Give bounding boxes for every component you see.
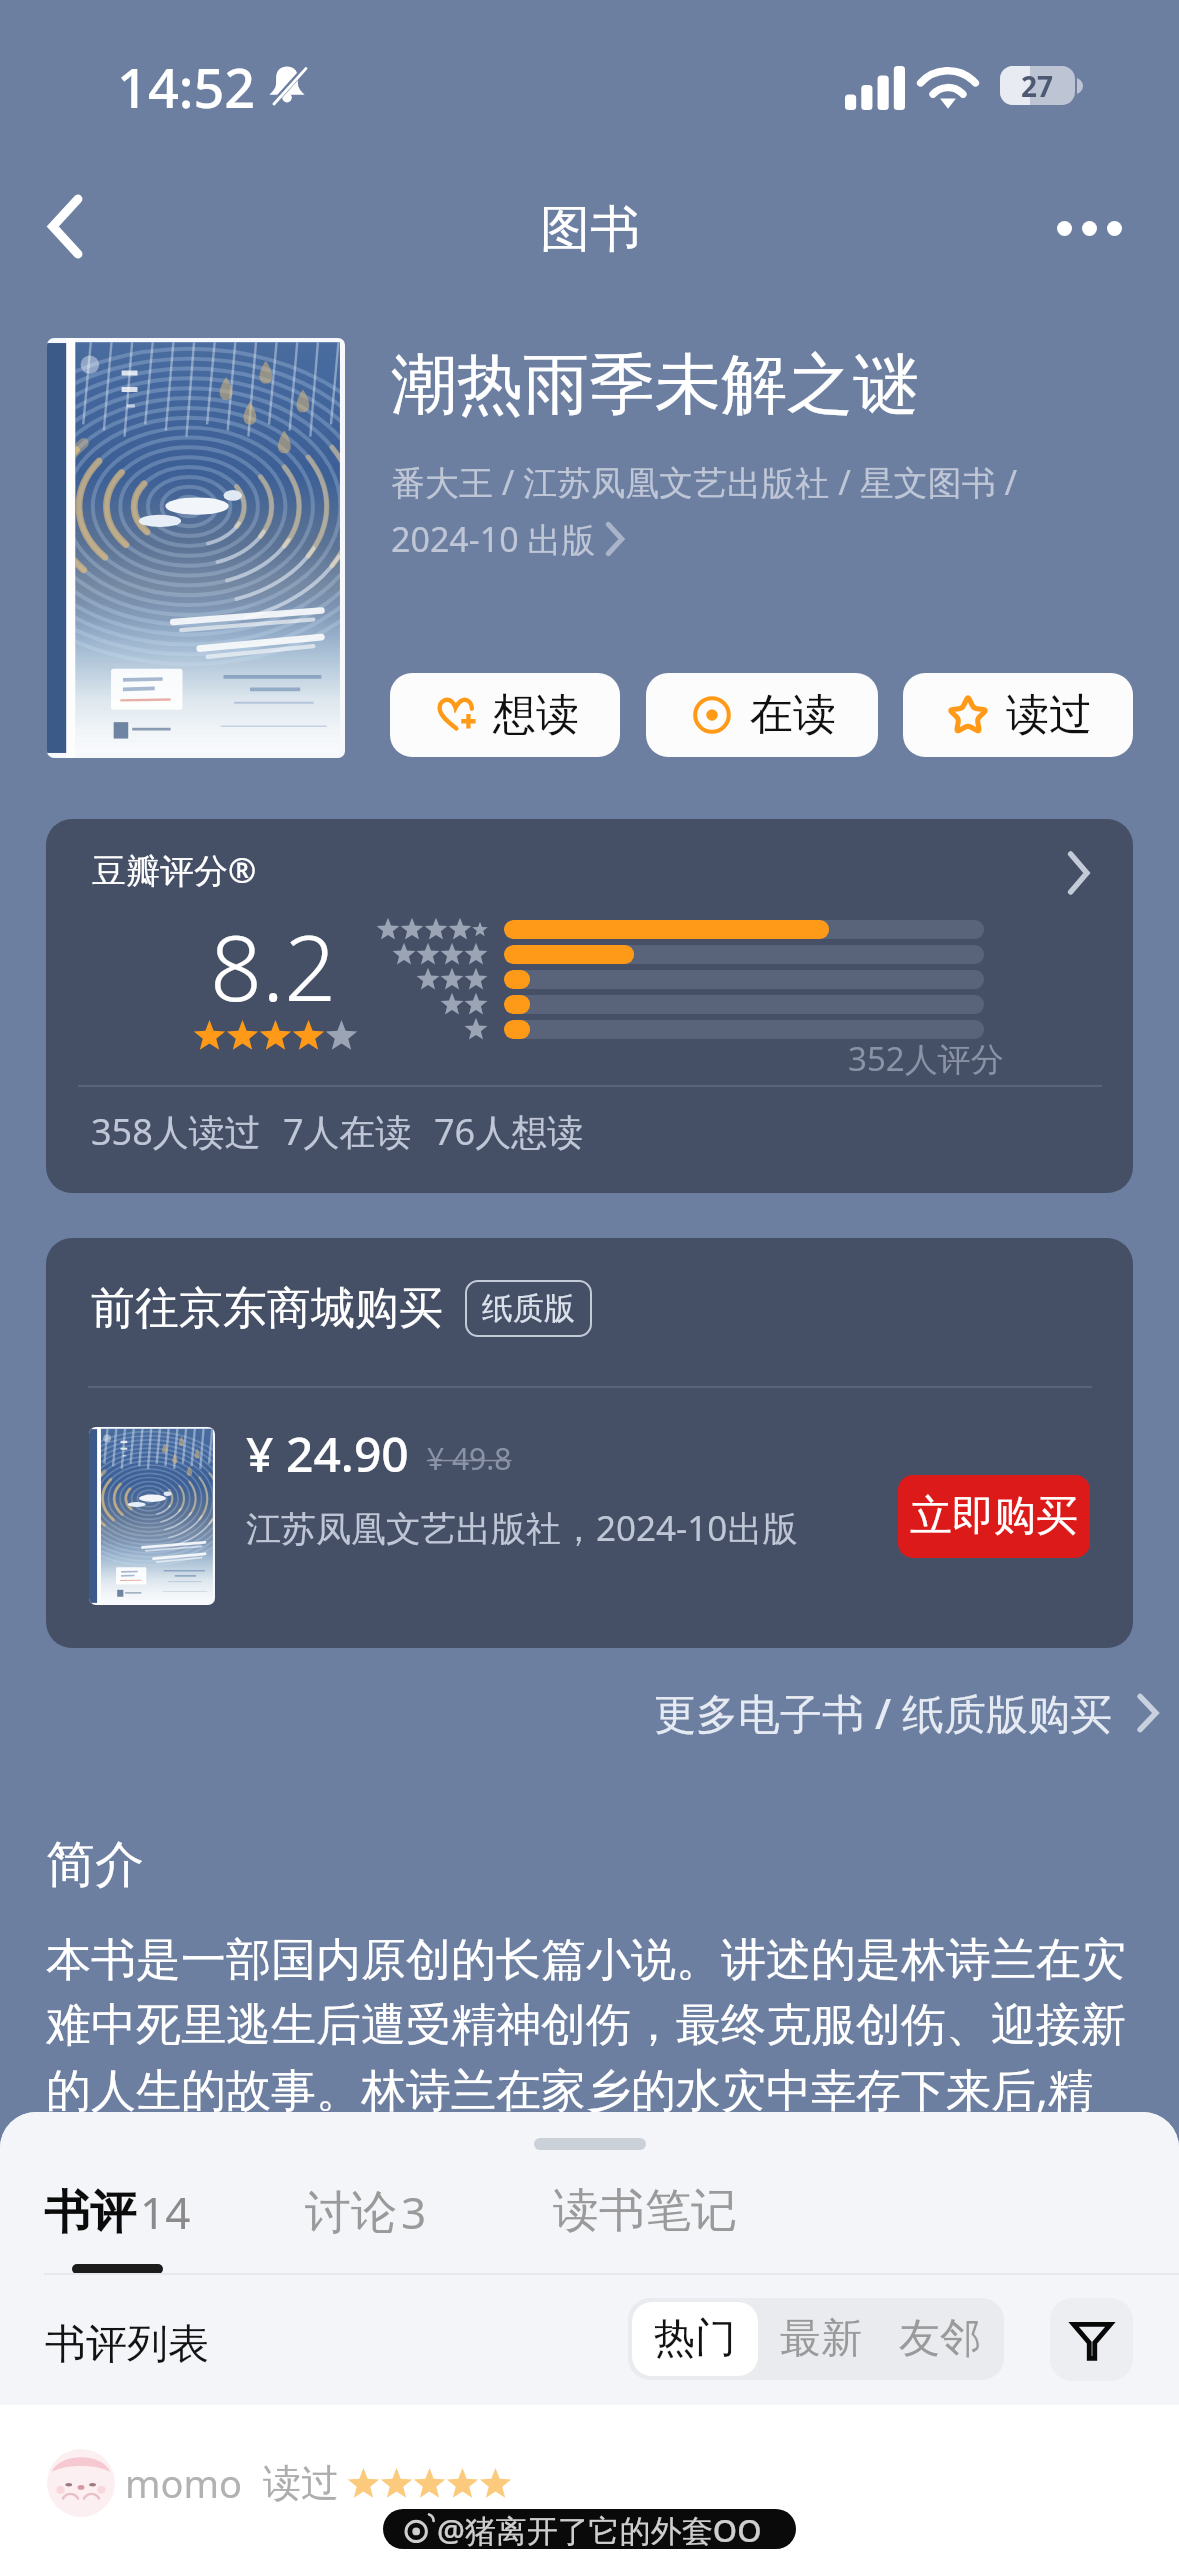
staticText: 读书笔记 xyxy=(553,2182,737,2240)
staticText: 纸质版 xyxy=(482,1289,575,1328)
staticText: momo xyxy=(125,2457,243,2509)
button[interactable]: Back xyxy=(19,180,111,272)
button[interactable]: 更多电子书 / 纸质版购买 xyxy=(648,1678,1165,1747)
staticText: 最新 xyxy=(780,2313,862,2365)
staticText: 简介 xyxy=(46,1834,144,1896)
button[interactable]: 书评 xyxy=(44,2182,191,2242)
staticText: 358人读过 xyxy=(91,1107,261,1156)
staticText: @猪离开了它的外套OO xyxy=(437,2509,762,2549)
staticText: 27 xyxy=(1021,67,1054,105)
button[interactable]: 讨论 xyxy=(305,2182,427,2242)
staticText: 14 xyxy=(140,2182,191,2242)
button[interactable]: 最新 xyxy=(762,2298,880,2380)
staticText: 江苏凤凰文艺出版社，2024-10出版 xyxy=(246,1504,798,1552)
staticText: 读过 xyxy=(1006,688,1092,742)
staticText: 书评 xyxy=(44,2184,136,2242)
staticText: 书评列表 xyxy=(45,2319,209,2371)
button[interactable]: Filter xyxy=(1050,2298,1133,2381)
staticText: 友邻 xyxy=(899,2313,981,2365)
staticText: 潮热雨季未解之谜 xyxy=(391,343,919,426)
staticText: 读过 xyxy=(263,2459,339,2507)
staticText: 前往京东商城购买 xyxy=(91,1281,443,1336)
staticText: 在读 xyxy=(750,688,836,742)
staticText: 352人评分 xyxy=(848,1036,1004,1081)
staticText: 更多电子书 / 纸质版购买 xyxy=(654,1684,1113,1741)
button[interactable]: 想读 xyxy=(390,673,620,757)
staticText: 讨论 xyxy=(305,2184,397,2242)
staticText: 番大王 / 江苏凤凰文艺出版社 / 星文图书 / 2024-10 出版 xyxy=(391,459,1018,562)
staticText: 7人在读 xyxy=(283,1107,412,1156)
button[interactable]: 立即购买 xyxy=(898,1475,1090,1558)
button[interactable]: 在读 xyxy=(646,673,878,757)
button[interactable]: More options xyxy=(1043,182,1135,274)
staticText: 76人想读 xyxy=(434,1107,584,1156)
staticText: 8.2 xyxy=(210,904,337,1028)
staticText: 豆瓣评分® xyxy=(92,847,257,893)
staticText: 本书是一部国内原创的长篇小说。讲述的是林诗兰在灾难中死里逃生后遭受精神创伤，最终… xyxy=(46,1932,1136,2183)
button[interactable]: 番大王 / 江苏凤凰文艺出版社 / 星文图书 / 2024-10 出版 xyxy=(391,459,1131,562)
button[interactable]: 豆瓣评分® xyxy=(46,819,1133,1193)
staticText: 图书 xyxy=(540,198,640,261)
button[interactable]: 读书笔记 xyxy=(553,2182,737,2240)
staticText: ¥ 49.8 xyxy=(427,1438,512,1479)
staticText: 3 xyxy=(401,2182,427,2242)
staticText: 14:52 xyxy=(117,50,256,124)
staticText: 想读 xyxy=(493,688,579,742)
staticText: ¥ 24.90 xyxy=(246,1421,409,1486)
button[interactable]: 读过 xyxy=(903,673,1133,757)
button[interactable]: 友邻 xyxy=(880,2298,1000,2380)
staticText: 立即购买 xyxy=(910,1490,1078,1543)
staticText: 热门 xyxy=(654,2313,736,2365)
button[interactable]: 热门 xyxy=(632,2302,758,2376)
